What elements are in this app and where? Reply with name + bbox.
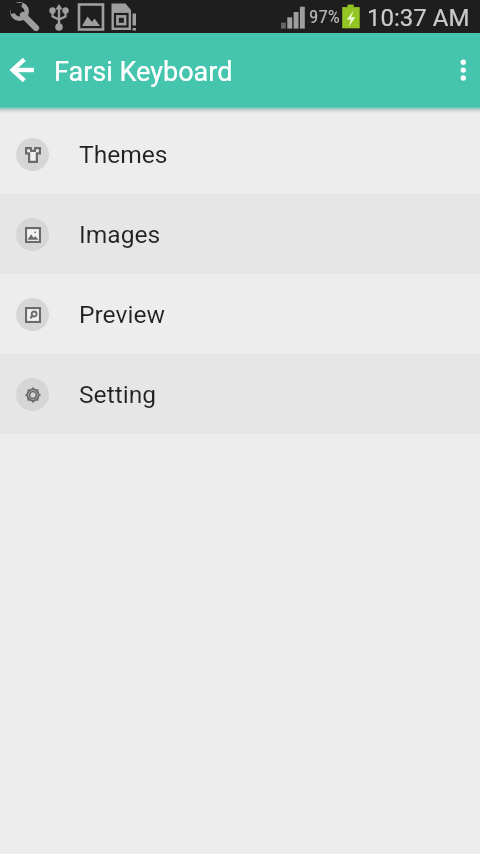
button[interactable]: Images	[0, 194, 480, 274]
button[interactable]: Themes	[0, 114, 480, 194]
button[interactable]: Back	[3, 50, 43, 90]
staticText: Themes	[79, 140, 168, 169]
button[interactable]: Setting	[0, 354, 480, 434]
staticText: Setting	[79, 380, 157, 409]
staticText: 10:37 AM	[367, 4, 470, 32]
button[interactable]: Preview	[0, 274, 480, 354]
staticText: Preview	[79, 300, 165, 329]
button[interactable]: More options	[432, 46, 480, 94]
staticText: 97%	[309, 5, 340, 27]
staticText: Images	[79, 220, 161, 249]
staticText: Farsi Keyboard	[54, 56, 233, 88]
